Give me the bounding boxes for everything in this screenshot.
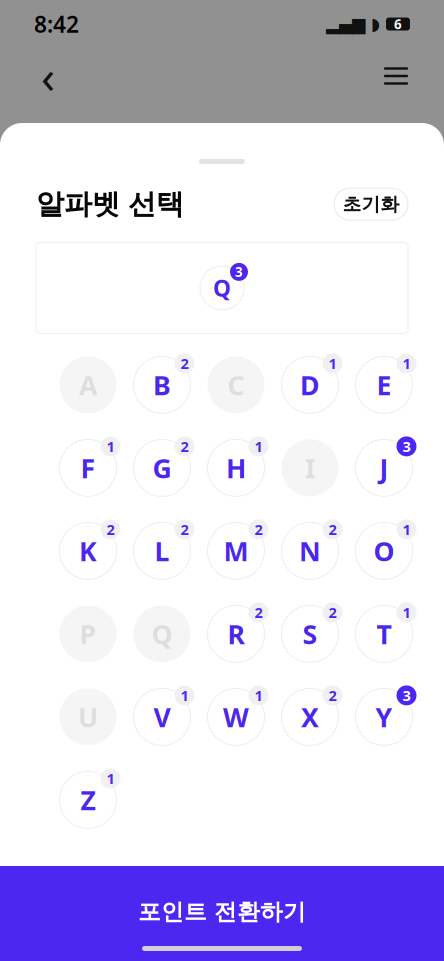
button[interactable]: Q (129, 602, 194, 665)
button[interactable]: X (277, 685, 342, 748)
staticText: 2 (180, 520, 188, 539)
staticText: 알파벳 선택 (36, 187, 184, 221)
staticText: G (152, 450, 171, 486)
button[interactable]: R (203, 602, 268, 665)
staticText: 3 (235, 263, 243, 281)
button[interactable]: L (129, 519, 194, 582)
button[interactable]: Z (55, 768, 120, 831)
staticText: 2 (254, 603, 262, 622)
staticText: E (376, 367, 391, 403)
button[interactable]: P (55, 602, 120, 665)
button[interactable]: 포인트 전환하기 (0, 866, 444, 961)
button[interactable]: N (277, 519, 342, 582)
button[interactable]: Menu (374, 54, 418, 98)
staticText: Y (375, 699, 392, 735)
staticText: S (302, 616, 317, 652)
staticText: 1 (402, 520, 410, 539)
button[interactable]: V (129, 685, 194, 748)
button[interactable]: Back (26, 54, 70, 98)
staticText: A (79, 367, 97, 403)
staticText: D (300, 367, 320, 403)
button[interactable]: G (129, 436, 194, 499)
staticText: J (379, 450, 388, 486)
button[interactable]: 초기화 (334, 188, 408, 220)
staticText: 8:42 (34, 9, 79, 39)
button[interactable]: T (351, 602, 416, 665)
staticText: V (153, 699, 170, 735)
staticText: U (78, 699, 98, 735)
staticText: B (153, 367, 171, 403)
button[interactable]: E (351, 353, 416, 416)
staticText: P (79, 616, 96, 652)
staticText: N (299, 533, 321, 569)
staticText: 1 (254, 686, 262, 705)
staticText: 1 (180, 686, 188, 705)
staticText: 2 (180, 354, 188, 373)
staticText: 2 (328, 603, 336, 622)
staticText: ‹ (41, 46, 55, 106)
staticText: H (226, 450, 246, 486)
staticText: 2 (106, 520, 114, 539)
button[interactable]: D (277, 353, 342, 416)
staticText: 6 (394, 15, 402, 33)
staticText: 1 (402, 603, 410, 622)
button[interactable]: K (55, 519, 120, 582)
button[interactable]: M (203, 519, 268, 582)
staticText: X (301, 699, 319, 735)
staticText: W (223, 699, 249, 735)
staticText: C (227, 367, 244, 403)
staticText: 2 (328, 686, 336, 705)
button[interactable]: F (55, 436, 120, 499)
staticText: 1 (328, 354, 336, 373)
staticText: ◗ (371, 14, 380, 34)
staticText: Z (80, 782, 95, 818)
staticText: 1 (402, 354, 410, 373)
staticText: L (154, 533, 169, 569)
staticText: I (305, 450, 315, 486)
staticText: Q (213, 273, 231, 303)
button[interactable]: Y (351, 685, 416, 748)
button[interactable]: H (203, 436, 268, 499)
button[interactable]: B (129, 353, 194, 416)
button[interactable]: U (55, 685, 120, 748)
staticText: O (373, 533, 394, 569)
button[interactable]: C (203, 353, 268, 416)
staticText: 포인트 전환하기 (138, 898, 306, 926)
staticText: T (376, 616, 391, 652)
staticText: 1 (106, 769, 114, 788)
button[interactable]: O (351, 519, 416, 582)
staticText: 2 (180, 437, 188, 456)
staticText: ▂▄▆ (326, 14, 365, 34)
button[interactable]: J (351, 436, 416, 499)
button[interactable]: Q (196, 263, 248, 313)
staticText: 2 (328, 520, 336, 539)
staticText: K (79, 533, 97, 569)
button[interactable]: I (277, 436, 342, 499)
staticText: F (80, 450, 95, 486)
staticText: R (227, 616, 244, 652)
staticText: 2 (254, 520, 262, 539)
staticText: 초기화 (342, 193, 399, 216)
button[interactable]: S (277, 602, 342, 665)
staticText: 3 (402, 686, 410, 705)
staticText: Q (151, 616, 172, 652)
staticText: 1 (106, 437, 114, 456)
staticText: 3 (402, 437, 410, 456)
button[interactable]: A (55, 353, 120, 416)
staticText: M (223, 533, 248, 569)
staticText: 1 (254, 437, 262, 456)
button[interactable]: W (203, 685, 268, 748)
